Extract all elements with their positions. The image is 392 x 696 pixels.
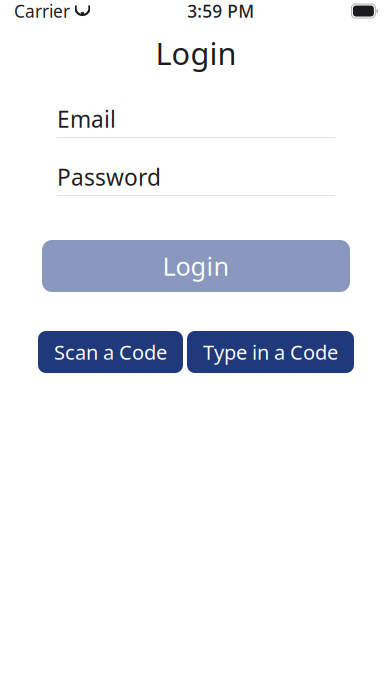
staticText: Login (162, 249, 229, 283)
staticText: Email (57, 104, 116, 134)
button[interactable]: Scan a Code (38, 331, 183, 373)
button[interactable]: Login (42, 240, 350, 292)
staticText: Carrier (14, 0, 70, 22)
staticText: Login (155, 33, 236, 73)
staticText: Type in a Code (203, 339, 338, 365)
staticText: Password (57, 162, 161, 192)
staticText: 3:59 PM (187, 0, 254, 22)
button[interactable]: Type in a Code (187, 331, 354, 373)
staticText: Scan a Code (54, 339, 167, 365)
